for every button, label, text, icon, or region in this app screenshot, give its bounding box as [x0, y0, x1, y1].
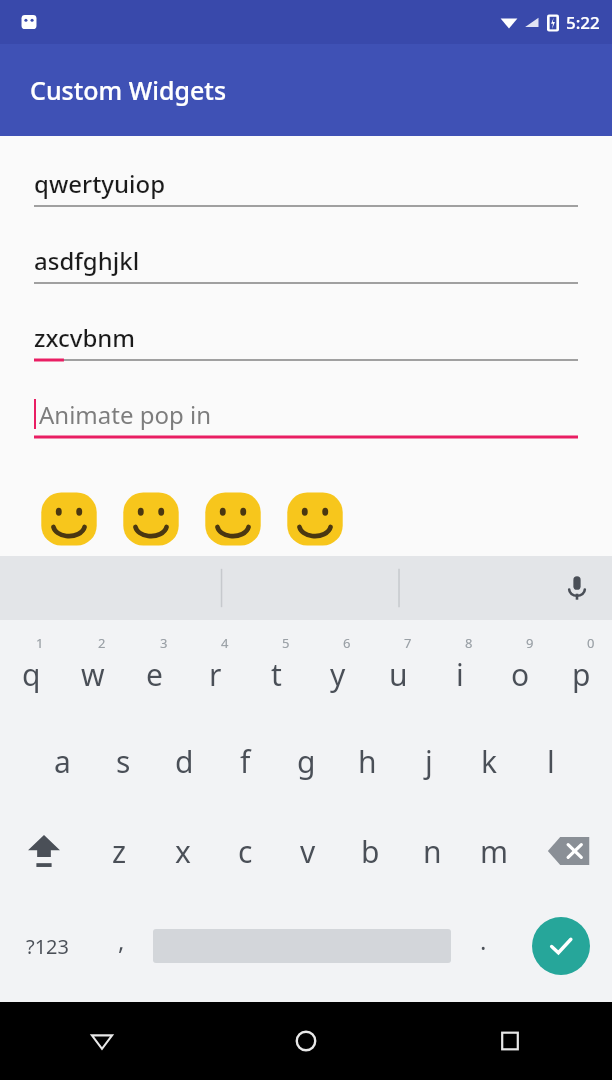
staticText: 0	[587, 634, 595, 652]
button[interactable]: Voice input	[560, 571, 594, 605]
staticText: g	[297, 741, 316, 782]
button[interactable]: b	[339, 806, 401, 896]
staticText: 9	[526, 634, 534, 652]
staticText: 3	[160, 634, 168, 652]
button[interactable]: ?123	[0, 896, 95, 996]
staticText: ,	[118, 924, 125, 957]
staticText: f	[240, 741, 251, 782]
staticText: h	[358, 741, 377, 782]
button[interactable]: c	[214, 806, 277, 896]
staticText: n	[423, 831, 442, 872]
button[interactable]: Back	[0, 1002, 204, 1080]
staticText: d	[175, 741, 194, 782]
button[interactable]: v	[277, 806, 339, 896]
staticText: k	[481, 741, 498, 782]
button[interactable]: Home	[204, 1002, 408, 1080]
staticText: m	[480, 831, 509, 872]
button[interactable]: .	[457, 896, 509, 996]
button[interactable]: g	[276, 716, 337, 806]
staticText: y	[330, 654, 346, 695]
staticText: q	[22, 654, 41, 695]
button[interactable]: qwertyuiop	[34, 152, 578, 229]
button[interactable]: ,	[95, 896, 147, 996]
staticText: 2	[98, 634, 106, 652]
staticText: .	[480, 924, 487, 957]
staticText: s	[116, 741, 131, 782]
button[interactable]: 2	[62, 620, 124, 716]
button[interactable]: 4	[185, 620, 246, 716]
staticText: qwertyuiop	[34, 167, 166, 200]
button[interactable]: m	[463, 806, 525, 896]
button[interactable]: j	[398, 716, 459, 806]
button[interactable]: zxcvbnm	[34, 306, 578, 383]
button[interactable]: 3	[124, 620, 185, 716]
staticText: w	[81, 654, 105, 695]
staticText: 5:22	[566, 11, 600, 34]
button[interactable]: Backspace	[525, 806, 612, 896]
staticText: 7	[404, 634, 412, 652]
button[interactable]: h	[337, 716, 398, 806]
staticText: 8	[465, 634, 473, 652]
button[interactable]: 5	[246, 620, 307, 716]
staticText: v	[300, 831, 316, 872]
staticText: 4	[221, 634, 229, 652]
button[interactable]: z	[88, 806, 151, 896]
button[interactable]: d	[154, 716, 215, 806]
staticText: Custom Widgets	[30, 73, 227, 107]
staticText: zxcvbnm	[34, 321, 136, 354]
staticText: j	[425, 741, 433, 782]
staticText: Animate pop in	[39, 398, 212, 431]
staticText: c	[238, 831, 253, 872]
button[interactable]: Shift	[0, 806, 88, 896]
staticText: x	[175, 831, 191, 872]
button[interactable]: 0	[551, 620, 612, 716]
button[interactable]: l	[520, 716, 581, 806]
button[interactable]: a	[32, 716, 93, 806]
button[interactable]: Enter	[509, 896, 612, 996]
button[interactable]: 9	[490, 620, 551, 716]
staticText: u	[389, 654, 408, 695]
button[interactable]: f	[215, 716, 276, 806]
staticText: t	[271, 654, 282, 695]
staticText: p	[572, 654, 591, 695]
button[interactable]: 7	[368, 620, 429, 716]
staticText: r	[209, 654, 222, 695]
staticText: ?123	[26, 933, 69, 960]
button[interactable]: 6	[307, 620, 368, 716]
button[interactable]: x	[151, 806, 214, 896]
staticText: i	[456, 654, 464, 695]
staticText: z	[112, 831, 127, 872]
staticText: 1	[36, 634, 44, 652]
staticText: a	[54, 741, 71, 782]
button[interactable]: Recents	[408, 1002, 612, 1080]
staticText: 5	[282, 634, 290, 652]
button[interactable]: s	[93, 716, 154, 806]
button[interactable]: Animate pop in	[34, 383, 578, 460]
button[interactable]: n	[401, 806, 463, 896]
button[interactable]: asdfghjkl	[34, 229, 578, 306]
staticText: b	[361, 831, 380, 872]
staticText: o	[511, 654, 530, 695]
button[interactable]: 8	[429, 620, 490, 716]
button[interactable]: 1	[0, 620, 62, 716]
button[interactable]: k	[459, 716, 520, 806]
staticText: l	[547, 741, 555, 782]
staticText: e	[146, 654, 163, 695]
button[interactable]: Space	[147, 896, 457, 996]
staticText: asdfghjkl	[34, 244, 140, 277]
staticText: 6	[343, 634, 351, 652]
